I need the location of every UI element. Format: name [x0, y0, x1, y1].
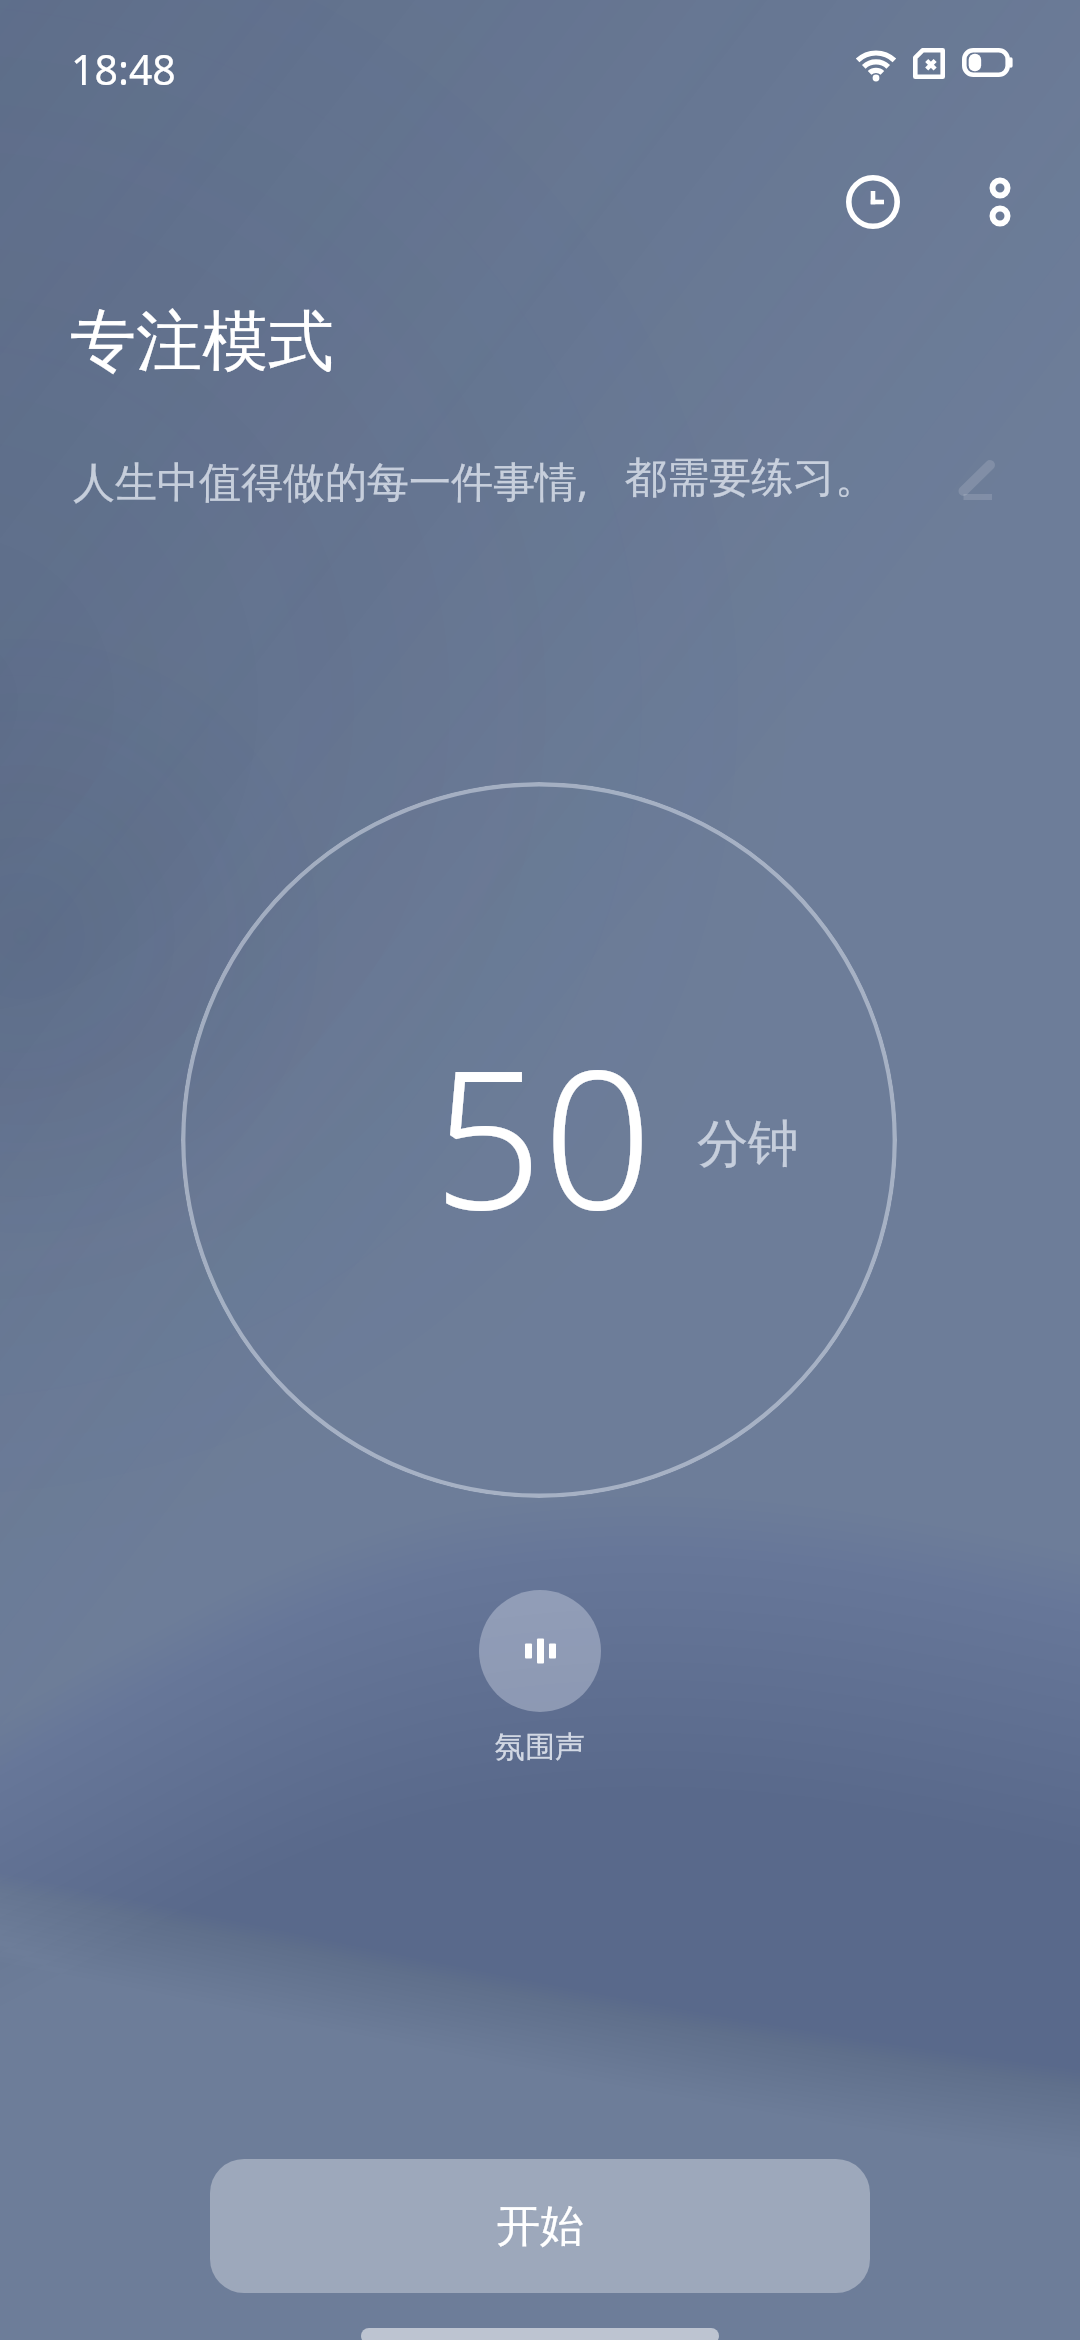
staticText: 50 — [433, 1004, 653, 1266]
button[interactable]: Edit — [921, 440, 1033, 520]
staticText: 氛围声 — [495, 1728, 585, 1766]
staticText: 开始 — [496, 2199, 584, 2254]
staticText: 分钟 — [697, 1112, 799, 1176]
button[interactable]: More options — [941, 143, 1059, 261]
button[interactable]: 开始 — [210, 2159, 870, 2293]
button[interactable]: History — [814, 143, 932, 261]
button[interactable]: 50 — [181, 782, 897, 1498]
staticText: 18:48 — [71, 41, 176, 97]
staticText: 都需要练习。 — [625, 452, 877, 505]
button[interactable]: 氛围声 — [479, 1590, 601, 1766]
staticText: 人生中值得做的每一件事情, — [73, 452, 589, 509]
staticText: 专注模式 — [70, 300, 334, 383]
